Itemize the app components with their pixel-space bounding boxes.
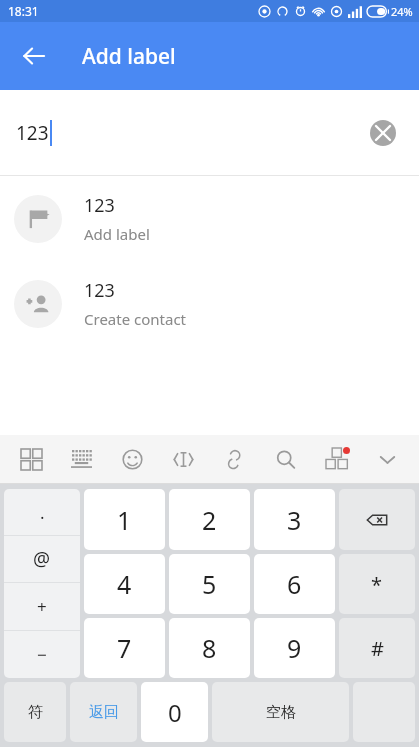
- button[interactable]: Keyboard: [56, 435, 107, 483]
- staticText: 18:31: [8, 3, 39, 19]
- staticText: *: [371, 571, 383, 598]
- button[interactable]: +: [4, 583, 80, 630]
- staticText: 123: [84, 193, 115, 218]
- staticText: 7: [117, 631, 132, 665]
- button[interactable]: Hide keyboard: [362, 435, 413, 483]
- button[interactable]: 3: [254, 489, 335, 550]
- staticText: 返回: [89, 703, 119, 722]
- staticText: 0: [168, 696, 182, 729]
- staticText: Add label: [84, 224, 150, 244]
- button[interactable]: 123: [0, 261, 419, 346]
- staticText: 1: [117, 503, 132, 537]
- button[interactable]: .: [4, 489, 80, 535]
- button[interactable]: −: [4, 631, 80, 678]
- button[interactable]: @: [4, 536, 80, 582]
- staticText: 123: [84, 278, 115, 303]
- staticText: Add label: [82, 42, 176, 71]
- button[interactable]: Backspace: [339, 489, 415, 550]
- staticText: @: [33, 546, 51, 572]
- button[interactable]: *: [339, 554, 415, 614]
- button[interactable]: 空格: [212, 682, 349, 742]
- button[interactable]: #: [339, 618, 415, 678]
- button[interactable]: Apps: [6, 435, 56, 483]
- staticText: 空格: [266, 703, 296, 722]
- staticText: 2: [202, 503, 217, 537]
- button[interactable]: 1: [84, 489, 165, 550]
- button[interactable]: 6: [254, 554, 335, 614]
- staticText: 5: [202, 567, 217, 601]
- button[interactable]: 符: [4, 682, 66, 742]
- button[interactable]: 0: [141, 682, 208, 742]
- button[interactable]: 返回: [70, 682, 137, 742]
- staticText: −: [37, 643, 47, 666]
- staticText: 3: [287, 503, 302, 537]
- staticText: 8: [202, 631, 217, 665]
- button[interactable]: 9: [254, 618, 335, 678]
- staticText: +: [37, 595, 47, 618]
- button[interactable]: Stickers: [311, 435, 362, 483]
- staticText: Create contact: [84, 309, 187, 329]
- staticText: 4: [117, 567, 132, 601]
- button[interactable]: Attach: [209, 435, 260, 483]
- button[interactable]: Emoji: [107, 435, 158, 483]
- staticText: 123: [16, 120, 49, 146]
- staticText: #: [371, 635, 384, 662]
- staticText: 符: [28, 703, 43, 722]
- button[interactable]: 2: [169, 489, 250, 550]
- button[interactable]: Clear: [361, 111, 405, 155]
- staticText: 6: [287, 567, 302, 601]
- button[interactable]: 123: [0, 176, 419, 261]
- button[interactable]: Search: [260, 435, 311, 483]
- button[interactable]: 4: [84, 554, 165, 614]
- button[interactable]: 5: [169, 554, 250, 614]
- button[interactable]: 8: [169, 618, 250, 678]
- staticText: 9: [287, 631, 302, 665]
- button[interactable]: 7: [84, 618, 165, 678]
- button[interactable]: Back: [10, 32, 58, 80]
- staticText: .: [40, 501, 45, 524]
- button[interactable]: Text cursor: [158, 435, 209, 483]
- staticText: 24%: [391, 4, 413, 19]
